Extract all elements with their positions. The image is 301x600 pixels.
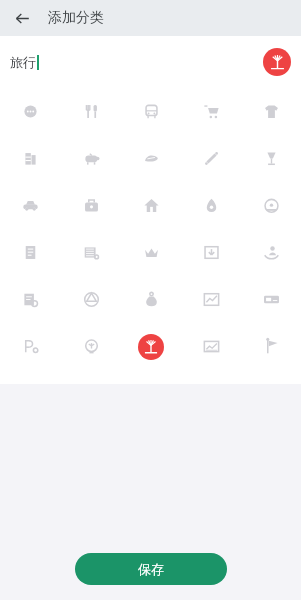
button[interactable]: Category icon 5 [241,88,301,135]
button[interactable]: Category icon 9 [181,135,241,182]
button[interactable]: 保存 [75,553,227,585]
button[interactable]: Category icon 27 [61,323,121,370]
button[interactable]: Category icon 2 [61,88,121,135]
button[interactable]: Category icon 21 [0,276,61,323]
button[interactable]: Category icon 29 [181,323,241,370]
button[interactable]: Category icon 26 [0,323,61,370]
button[interactable]: Category icon 19 [181,229,241,276]
button[interactable]: Category icon 22 [61,276,121,323]
button[interactable]: Category icon 17 [61,229,121,276]
button[interactable]: Selected category icon [263,48,291,76]
button[interactable]: Category icon 28 [121,323,181,370]
button[interactable]: Category icon 3 [121,88,181,135]
button[interactable]: Category icon 8 [121,135,181,182]
button[interactable]: Category icon 13 [121,182,181,229]
button[interactable]: Category icon 16 [0,229,61,276]
button[interactable]: Category icon 25 [241,276,301,323]
button[interactable]: Category icon 6 [0,135,61,182]
button[interactable]: Back [8,4,36,32]
button[interactable]: Category icon 4 [181,88,241,135]
button[interactable]: Category icon 23 [121,276,181,323]
button[interactable]: Category icon 14 [181,182,241,229]
button[interactable]: Category icon 10 [241,135,301,182]
staticText: 旅行 [10,54,36,70]
button[interactable]: Category icon 7 [61,135,121,182]
button[interactable]: Category icon 30 [241,323,301,370]
button[interactable]: Category icon 1 [0,88,61,135]
staticText: 添加分类 [48,9,104,27]
button[interactable]: Category icon 11 [0,182,61,229]
staticText: 保存 [138,561,164,577]
button[interactable]: Category icon 18 [121,229,181,276]
button[interactable]: Category icon 12 [61,182,121,229]
button[interactable]: Category icon 15 [241,182,301,229]
button[interactable]: Category icon 20 [241,229,301,276]
button[interactable]: Category icon 24 [181,276,241,323]
